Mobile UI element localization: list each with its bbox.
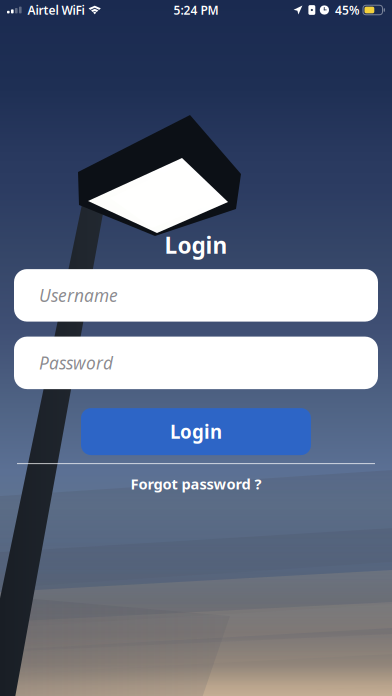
staticText: Login	[170, 419, 222, 444]
staticText: Airtel WiFi	[28, 2, 85, 18]
button[interactable]: Forgot password ?	[110, 464, 281, 494]
staticText: 5:24 PM	[173, 2, 218, 18]
button[interactable]: Login	[81, 408, 311, 455]
button[interactable]: Username	[0, 269, 392, 322]
staticText: 45%	[335, 2, 360, 18]
button[interactable]: Password	[0, 337, 392, 389]
staticText: Login	[164, 230, 227, 260]
staticText: Username	[39, 284, 118, 307]
staticText: Forgot password ?	[130, 474, 261, 494]
staticText: Password	[39, 351, 113, 374]
